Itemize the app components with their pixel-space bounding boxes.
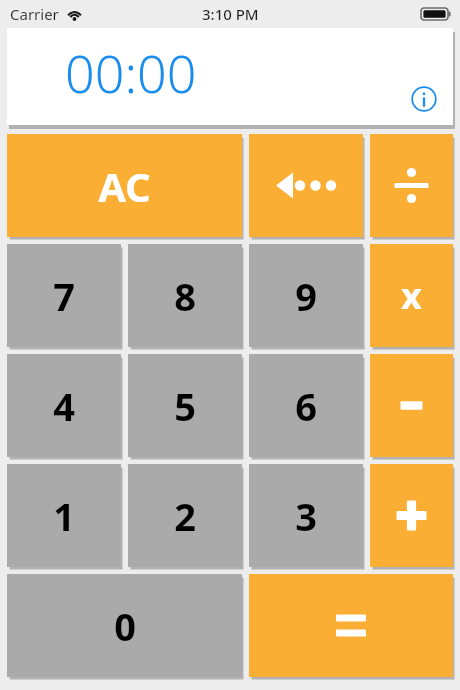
- staticText: 7: [53, 270, 75, 322]
- button[interactable]: 8: [128, 244, 242, 347]
- staticText: 00:00: [65, 37, 197, 108]
- staticText: 3:10 PM: [202, 4, 259, 24]
- staticText: Carrier: [10, 4, 59, 24]
- button[interactable]: 6: [249, 354, 363, 457]
- button[interactable]: Equals: [249, 574, 453, 677]
- button[interactable]: Backspace: [249, 134, 363, 237]
- staticText: 4: [53, 380, 75, 432]
- staticText: 5: [174, 380, 196, 432]
- staticText: AC: [98, 159, 151, 213]
- button[interactable]: 0: [7, 574, 242, 677]
- button[interactable]: Plus: [370, 464, 453, 567]
- button[interactable]: x: [370, 244, 453, 347]
- button[interactable]: 2: [128, 464, 242, 567]
- staticText: 1: [53, 490, 75, 542]
- button[interactable]: 4: [7, 354, 121, 457]
- button[interactable]: 9: [249, 244, 363, 347]
- staticText: 3: [295, 490, 317, 542]
- staticText: 6: [295, 380, 317, 432]
- button[interactable]: AC: [7, 134, 242, 237]
- staticText: 9: [295, 270, 317, 322]
- staticText: 8: [174, 270, 196, 322]
- button[interactable]: 5: [128, 354, 242, 457]
- button[interactable]: 3: [249, 464, 363, 567]
- staticText: 0: [114, 600, 136, 652]
- button[interactable]: Info: [409, 84, 439, 114]
- button[interactable]: Divide: [370, 134, 453, 237]
- button[interactable]: Minus: [370, 354, 453, 457]
- staticText: 2: [174, 490, 196, 542]
- staticText: x: [401, 271, 422, 320]
- button[interactable]: 7: [7, 244, 121, 347]
- button[interactable]: 1: [7, 464, 121, 567]
